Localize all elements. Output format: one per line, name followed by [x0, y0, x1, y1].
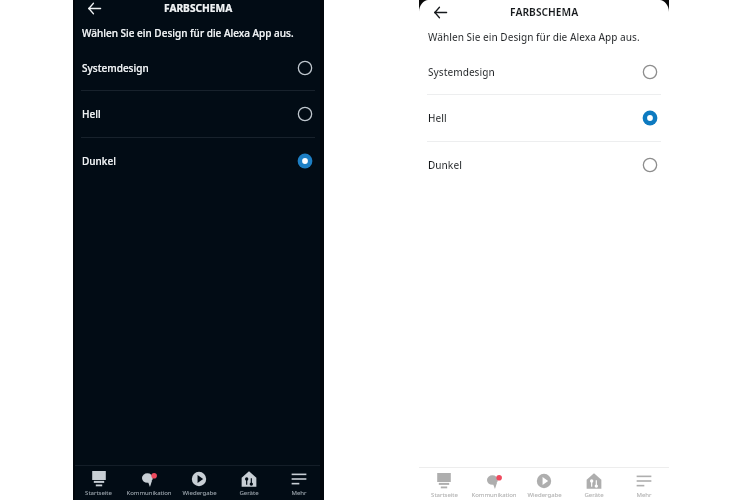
staticText: FARBSCHEMA — [164, 1, 233, 15]
staticText: FARBSCHEMA — [510, 5, 579, 19]
button[interactable]: Dunkel — [73, 143, 324, 179]
staticText: Geräte — [239, 489, 259, 497]
staticText: Wiedergabe — [182, 489, 217, 497]
staticText: Geräte — [584, 491, 604, 499]
button[interactable]: Wiedergabe — [174, 466, 224, 500]
button[interactable]: Geräte — [569, 468, 619, 500]
staticText: Kommunikation — [471, 491, 517, 499]
button[interactable]: Dunkel — [419, 147, 669, 183]
button[interactable]: Startseite — [73, 466, 124, 500]
button[interactable]: Mehr — [274, 466, 324, 500]
button[interactable]: Hell — [419, 100, 669, 136]
staticText: Wiedergabe — [527, 491, 562, 499]
staticText: Systemdesign — [428, 65, 495, 79]
staticText: Startseite — [431, 491, 458, 499]
staticText: Systemdesign — [82, 61, 149, 75]
button[interactable]: Startseite — [419, 468, 469, 500]
staticText: Startseite — [85, 489, 112, 497]
staticText: Hell — [428, 111, 447, 125]
button[interactable]: Mehr — [619, 468, 669, 500]
staticText: Dunkel — [428, 158, 462, 172]
button[interactable]: Geräte — [224, 466, 274, 500]
button[interactable]: Back — [87, 1, 101, 15]
button[interactable]: Back — [433, 5, 447, 19]
button[interactable]: Kommunikation — [124, 466, 174, 500]
staticText: Hell — [82, 107, 101, 121]
button[interactable]: Systemdesign — [419, 54, 669, 90]
staticText: Kommunikation — [126, 489, 172, 497]
button[interactable]: Systemdesign — [73, 50, 324, 86]
button[interactable]: Wiedergabe — [519, 468, 569, 500]
staticText: Mehr — [636, 491, 652, 499]
staticText: Dunkel — [82, 154, 116, 168]
button[interactable]: Hell — [73, 96, 324, 132]
staticText: Wählen Sie ein Design für die Alexa App … — [428, 30, 640, 44]
staticText: Mehr — [291, 489, 307, 497]
staticText: Wählen Sie ein Design für die Alexa App … — [82, 26, 294, 40]
button[interactable]: Kommunikation — [469, 468, 519, 500]
